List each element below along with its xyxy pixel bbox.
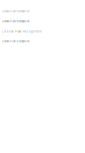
staticText: License Plate Recognition <box>2 30 42 33</box>
staticText: License Plate Recognition <box>2 10 29 13</box>
staticText: License Plate Recognition <box>2 20 29 23</box>
staticText: License Plate Recognition <box>2 40 29 43</box>
